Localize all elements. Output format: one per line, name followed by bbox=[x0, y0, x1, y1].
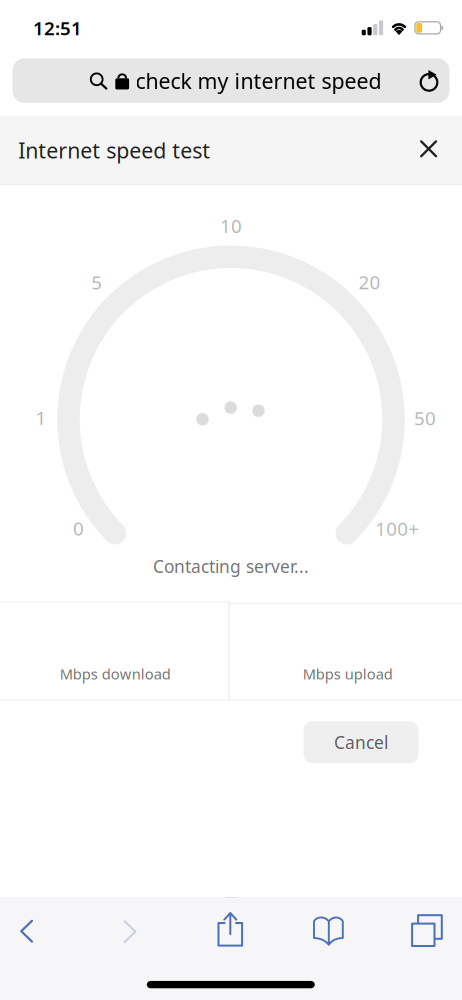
staticText: Cancel bbox=[334, 731, 388, 754]
button[interactable]: Forward bbox=[101, 905, 159, 959]
staticText: 12:51 bbox=[33, 16, 82, 40]
button[interactable]: Cancel bbox=[303, 721, 418, 763]
staticText: Mbps download bbox=[60, 664, 171, 684]
staticText: Mbps upload bbox=[303, 664, 393, 684]
button[interactable]: Close bbox=[403, 123, 455, 175]
staticText: 20 bbox=[358, 270, 380, 294]
button[interactable]: Share bbox=[201, 902, 259, 956]
button[interactable]: Bookmarks bbox=[299, 904, 357, 958]
staticText: check my internet speed bbox=[135, 67, 381, 95]
staticText: 50 bbox=[414, 405, 436, 430]
button[interactable]: Tabs bbox=[398, 904, 456, 958]
staticText: 100+ bbox=[375, 516, 419, 541]
staticText: 1 bbox=[35, 405, 46, 430]
staticText: 5 bbox=[91, 270, 102, 295]
staticText: Internet speed test bbox=[18, 136, 210, 164]
staticText: 10 bbox=[220, 213, 242, 238]
staticText: 0 bbox=[73, 516, 84, 541]
staticText: Contacting server... bbox=[153, 555, 309, 578]
button[interactable]: Back bbox=[0, 904, 56, 958]
button[interactable]: check my internet speed bbox=[12, 58, 449, 103]
